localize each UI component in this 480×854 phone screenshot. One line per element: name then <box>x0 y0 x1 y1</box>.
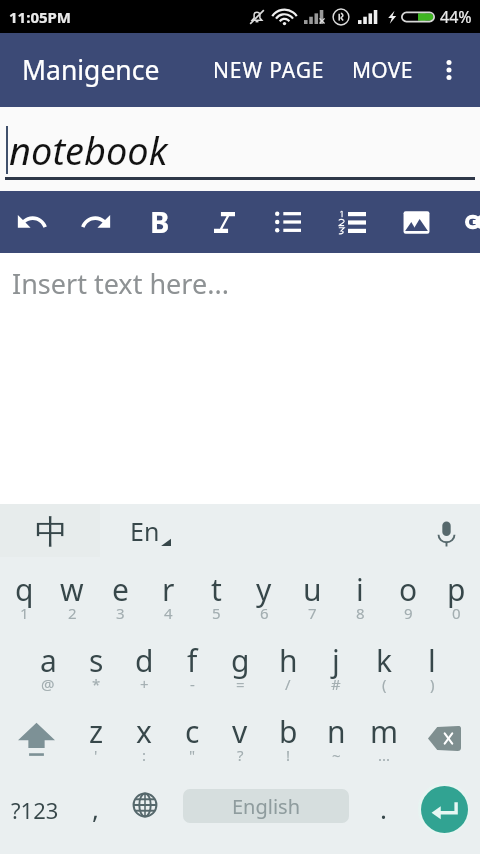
staticText: c <box>185 711 200 752</box>
staticText: h <box>279 640 298 681</box>
staticText: m <box>370 711 399 752</box>
button[interactable]: h <box>264 628 312 699</box>
staticText: 4 <box>164 603 173 623</box>
staticText: a <box>40 640 57 681</box>
button[interactable]: ?123 <box>0 770 69 854</box>
staticText: English <box>232 793 301 820</box>
button[interactable]: y <box>240 557 288 628</box>
staticText: 1 <box>20 603 29 623</box>
button[interactable]: Voice input <box>418 504 474 557</box>
staticText: 中 <box>35 511 68 553</box>
button[interactable]: x <box>120 699 168 770</box>
staticText: ... <box>378 745 391 765</box>
button[interactable]: s <box>72 628 120 699</box>
button[interactable]: Numbered list <box>320 191 384 253</box>
button[interactable]: Bulleted list <box>256 191 320 253</box>
staticText: ) <box>430 674 435 694</box>
staticText: = <box>236 674 245 694</box>
button[interactable]: NEW PAGE <box>210 33 328 107</box>
staticText: v <box>232 711 248 752</box>
button[interactable]: q <box>0 557 48 628</box>
button[interactable]: Insert image <box>384 191 448 253</box>
staticText: 5 <box>212 603 221 623</box>
button[interactable]: j <box>312 628 360 699</box>
staticText: d <box>135 640 154 681</box>
staticText: ? <box>237 745 244 765</box>
button[interactable]: Italic <box>192 191 256 253</box>
button[interactable]: f <box>168 628 216 699</box>
staticText: 9 <box>404 603 413 623</box>
staticText: " <box>189 745 196 765</box>
button[interactable]: b <box>264 699 312 770</box>
button[interactable]: p <box>432 557 480 628</box>
button[interactable]: Insert link <box>448 191 480 253</box>
staticText: p <box>447 569 466 610</box>
staticText: y <box>256 569 272 610</box>
button[interactable]: l <box>408 628 456 699</box>
staticText: q <box>15 569 34 610</box>
staticText: 8 <box>356 603 365 623</box>
staticText: 11:05PM <box>9 7 71 27</box>
staticText: 3 <box>116 603 125 623</box>
staticText: g <box>231 640 250 681</box>
button[interactable]: . <box>357 770 409 854</box>
button[interactable]: u <box>288 557 336 628</box>
staticText: k <box>376 640 393 681</box>
staticText: Insert text here... <box>12 265 229 302</box>
staticText: 2 <box>68 603 77 623</box>
button[interactable]: English <box>183 789 349 823</box>
staticText: notebook <box>9 124 168 176</box>
button[interactable]: v <box>216 699 264 770</box>
button[interactable]: i <box>336 557 384 628</box>
staticText: r <box>162 569 175 610</box>
staticText: f <box>187 640 198 681</box>
staticText: 44% <box>440 6 472 28</box>
button[interactable]: MOVE <box>340 33 424 107</box>
staticText: e <box>112 569 129 610</box>
button[interactable]: n <box>312 699 360 770</box>
staticText: t <box>211 569 222 610</box>
button[interactable]: Backspace <box>408 699 480 770</box>
button[interactable]: Shift <box>0 699 72 770</box>
button[interactable]: Undo <box>0 191 64 253</box>
staticText: w <box>60 569 84 610</box>
staticText: . <box>380 791 387 826</box>
button[interactable]: t <box>192 557 240 628</box>
staticText: + <box>140 674 149 694</box>
button[interactable]: o <box>384 557 432 628</box>
staticText: Manigence <box>22 52 160 88</box>
staticText: * <box>92 674 101 694</box>
button[interactable]: B <box>128 191 192 253</box>
staticText: MOVE <box>352 56 413 85</box>
button[interactable]: z <box>72 699 120 770</box>
staticText: z <box>89 711 104 752</box>
staticText: l <box>428 640 436 681</box>
staticText: : <box>142 745 147 765</box>
button[interactable]: More options <box>423 33 475 107</box>
staticText: 6 <box>260 603 269 623</box>
button[interactable]: Redo <box>64 191 128 253</box>
staticText: B <box>150 202 170 241</box>
staticText: ?123 <box>11 795 59 825</box>
button[interactable]: e <box>96 557 144 628</box>
staticText: 7 <box>308 603 317 623</box>
button[interactable]: r <box>144 557 192 628</box>
button[interactable]: Enter <box>421 786 468 833</box>
button[interactable]: m <box>360 699 408 770</box>
button[interactable]: g <box>216 628 264 699</box>
button[interactable]: k <box>360 628 408 699</box>
staticText: , <box>92 791 99 826</box>
button[interactable]: c <box>168 699 216 770</box>
button[interactable]: d <box>120 628 168 699</box>
button[interactable]: 中 <box>0 504 100 557</box>
button[interactable]: a <box>24 628 72 699</box>
staticText: 0 <box>452 603 461 623</box>
button[interactable]: , <box>69 770 121 854</box>
staticText: u <box>303 569 322 610</box>
staticText: b <box>279 711 298 752</box>
staticText: ! <box>286 745 291 765</box>
button[interactable]: Change language <box>121 770 169 854</box>
button[interactable]: En <box>100 504 200 557</box>
staticText: NEW PAGE <box>213 56 325 85</box>
button[interactable]: w <box>48 557 96 628</box>
